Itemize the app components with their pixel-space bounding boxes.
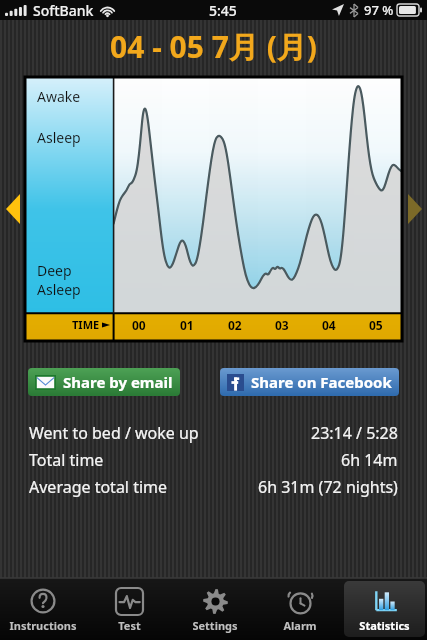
staticText: 04 - 05 7月 (月) xyxy=(110,26,317,67)
staticText: 05 xyxy=(369,317,383,333)
button[interactable]: Settings xyxy=(172,578,257,640)
button[interactable]: Statistics xyxy=(344,581,425,637)
staticText: 01 xyxy=(180,317,194,333)
button[interactable]: Instructions xyxy=(0,578,86,640)
staticText: Asleep xyxy=(37,280,81,299)
staticText: Awake xyxy=(37,87,81,106)
button[interactable]: Previous night xyxy=(0,72,25,346)
staticText: 02 xyxy=(228,317,242,333)
staticText: 97 % xyxy=(364,1,394,19)
staticText: Share by email xyxy=(63,372,173,392)
staticText: Settings xyxy=(192,618,238,633)
button[interactable]: Share on Facebook xyxy=(220,368,399,396)
staticText: 23:14 / 5:28 xyxy=(311,422,398,444)
button[interactable]: Alarm xyxy=(257,578,342,640)
staticText: 03 xyxy=(275,317,289,333)
staticText: 5:45 xyxy=(209,1,237,20)
staticText: 6h 14m xyxy=(341,449,398,471)
button[interactable]: Share by email xyxy=(28,368,180,396)
button[interactable]: Next night xyxy=(402,72,427,346)
staticText: Statistics xyxy=(359,618,410,633)
staticText: SoftBank xyxy=(33,1,94,20)
staticText: Average total time xyxy=(29,476,168,498)
staticText: Alarm xyxy=(283,618,317,633)
staticText: Instructions xyxy=(9,618,77,633)
staticText: 6h 31m (72 nights) xyxy=(258,476,398,498)
staticText: TIME xyxy=(72,317,100,332)
staticText: 04 xyxy=(322,317,336,333)
staticText: Total time xyxy=(29,449,104,471)
staticText: Share on Facebook xyxy=(251,372,392,392)
button[interactable]: Test xyxy=(86,578,172,640)
staticText: 00 xyxy=(132,317,146,333)
staticText: Test xyxy=(118,618,141,633)
staticText: Asleep xyxy=(37,128,81,147)
staticText: Deep xyxy=(37,261,72,280)
staticText: Went to bed / woke up xyxy=(29,422,199,444)
